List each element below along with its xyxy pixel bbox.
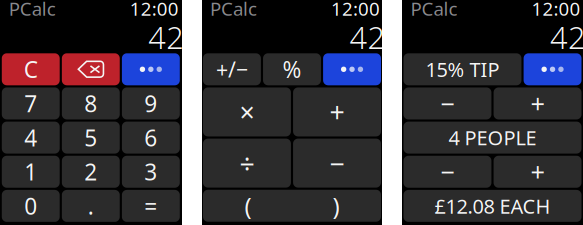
staticText: ) xyxy=(332,190,339,222)
staticText: 5 xyxy=(84,122,97,153)
staticText: 12:00 xyxy=(531,0,580,21)
staticText: % xyxy=(282,54,301,84)
button[interactable]: 0 xyxy=(2,190,60,222)
staticText: PCalc xyxy=(410,0,457,21)
staticText: . xyxy=(88,191,94,221)
staticText: +/− xyxy=(216,55,248,83)
staticText: 7 xyxy=(24,88,37,118)
button[interactable]: 8 xyxy=(62,87,120,119)
staticText: 6 xyxy=(144,122,157,153)
staticText: − xyxy=(440,155,454,188)
staticText: 8 xyxy=(84,88,97,118)
button[interactable]: + xyxy=(293,87,381,136)
button[interactable]: 7 xyxy=(2,87,60,119)
button[interactable]: . xyxy=(62,190,120,222)
staticText: C xyxy=(24,54,38,84)
button[interactable]: More xyxy=(524,53,581,85)
staticText: 4 PEOPLE xyxy=(448,124,536,151)
staticText: + xyxy=(530,155,544,188)
button[interactable]: +/− xyxy=(203,53,261,85)
button[interactable]: − xyxy=(403,87,491,119)
staticText: + xyxy=(329,94,344,130)
button[interactable]: + xyxy=(494,87,581,119)
staticText: + xyxy=(530,87,544,120)
button[interactable]: − xyxy=(293,139,381,188)
button[interactable]: More xyxy=(122,53,180,85)
staticText: ÷ xyxy=(239,145,254,181)
button[interactable]: 6 xyxy=(122,122,180,154)
staticText: 12:00 xyxy=(130,0,179,21)
button[interactable]: More xyxy=(323,53,381,85)
staticText: 42 xyxy=(148,17,184,57)
staticText: 15% TIP xyxy=(425,56,499,83)
staticText: 42 xyxy=(349,17,385,57)
staticText: 3 xyxy=(144,157,157,187)
staticText: 4 xyxy=(24,122,37,153)
button[interactable]: 4 xyxy=(2,122,60,154)
staticText: − xyxy=(329,145,344,181)
button[interactable]: ( xyxy=(203,190,381,222)
staticText: £12.08 EACH xyxy=(434,193,550,219)
staticText: − xyxy=(440,87,454,120)
button[interactable]: % xyxy=(263,53,321,85)
staticText: × xyxy=(239,94,254,130)
staticText: 12:00 xyxy=(331,0,380,21)
staticText: 0 xyxy=(24,191,37,221)
button[interactable]: = xyxy=(122,190,180,222)
button[interactable]: + xyxy=(494,156,581,188)
staticText: PCalc xyxy=(9,0,56,21)
button[interactable]: − xyxy=(403,156,491,188)
button[interactable]: ÷ xyxy=(203,139,291,188)
button[interactable]: £12.08 EACH xyxy=(403,190,581,222)
staticText: 2 xyxy=(84,157,97,187)
button[interactable]: 1 xyxy=(2,156,60,188)
staticText: 1 xyxy=(24,157,37,187)
button[interactable]: Delete xyxy=(62,53,120,85)
staticText: = xyxy=(144,191,157,221)
button[interactable]: 15% TIP xyxy=(403,53,521,85)
button[interactable]: 4 PEOPLE xyxy=(403,122,581,154)
button[interactable]: 2 xyxy=(62,156,120,188)
button[interactable]: 5 xyxy=(62,122,120,154)
button[interactable]: × xyxy=(203,87,291,136)
staticText: 42 xyxy=(550,17,583,57)
staticText: PCalc xyxy=(210,0,257,21)
staticText: ( xyxy=(244,190,251,222)
button[interactable]: 3 xyxy=(122,156,180,188)
button[interactable]: C xyxy=(2,53,60,85)
staticText: 9 xyxy=(144,88,157,118)
button[interactable]: 9 xyxy=(122,87,180,119)
